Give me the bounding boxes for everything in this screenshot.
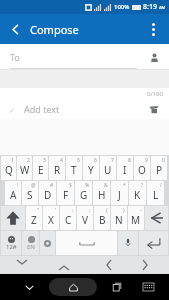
button[interactable]: % — [75, 181, 92, 205]
staticText: 9 — [145, 157, 148, 164]
button[interactable]: ' — [43, 206, 59, 230]
button[interactable]: Switch keyboard — [137, 276, 159, 298]
button[interactable]: 4 — [49, 156, 65, 180]
staticText: L — [153, 188, 159, 202]
button[interactable]: 7 — [100, 156, 116, 180]
button[interactable]: " — [26, 206, 42, 230]
button[interactable]: 6 — [83, 156, 99, 180]
staticText: P — [156, 163, 163, 177]
staticText: G — [80, 188, 88, 202]
button[interactable]: Send — [145, 100, 163, 118]
staticText: 6 — [94, 157, 97, 164]
staticText: Compose — [30, 22, 79, 37]
staticText: Z — [31, 213, 37, 227]
button[interactable]: Space — [56, 231, 117, 255]
staticText: R — [54, 163, 61, 177]
staticText: Q — [5, 163, 13, 177]
button[interactable]: @ — [22, 181, 38, 205]
button[interactable]: Right — [127, 256, 169, 274]
button[interactable]: * — [111, 181, 128, 205]
button[interactable]: ? — [129, 181, 146, 205]
staticText: # — [50, 182, 54, 189]
button[interactable]: Hide keyboard — [17, 276, 41, 298]
button[interactable]: Voice input — [118, 231, 138, 255]
button[interactable]: Symbols — [1, 231, 21, 255]
button[interactable]: # — [39, 181, 56, 205]
staticText: EN — [27, 243, 35, 251]
button[interactable]: : — [60, 206, 76, 230]
button[interactable]: $ — [57, 181, 74, 205]
button[interactable]: Down — [43, 256, 85, 274]
button[interactable]: Language — [22, 231, 39, 255]
button[interactable]: ) — [111, 206, 127, 230]
button[interactable]: 5 — [66, 156, 82, 180]
staticText: ' — [55, 207, 57, 214]
button[interactable]: Backspace — [145, 206, 168, 230]
staticText: C — [65, 213, 72, 227]
button[interactable]: Home — [49, 278, 97, 296]
button[interactable]: Shift — [1, 206, 25, 230]
staticText: " — [37, 207, 40, 214]
staticText: 8 — [128, 157, 131, 164]
staticText: % — [85, 182, 90, 189]
staticText: ; — [89, 207, 91, 214]
staticText: 3 — [43, 157, 46, 164]
staticText: W — [20, 163, 30, 177]
staticText: X — [48, 213, 54, 227]
button[interactable]: 8 — [117, 156, 133, 180]
button[interactable]: - — [128, 206, 144, 230]
button[interactable]: ; — [77, 206, 93, 230]
button[interactable]: 1 — [1, 156, 16, 180]
button[interactable]: & — [93, 181, 110, 205]
staticText: F — [63, 188, 69, 202]
staticText: O — [138, 163, 146, 177]
staticText: $ — [69, 182, 72, 189]
staticText: 5 — [77, 157, 80, 164]
staticText: 7 — [111, 157, 114, 164]
staticText: 2 — [27, 157, 30, 164]
button[interactable]: Recent apps — [105, 276, 129, 298]
button[interactable]: 9 — [134, 156, 150, 180]
staticText: 4 — [60, 157, 63, 164]
staticText: V — [82, 213, 88, 227]
staticText: 0 — [162, 157, 165, 164]
staticText: To — [10, 51, 20, 63]
button[interactable]: Left — [85, 256, 127, 274]
button[interactable]: 2 — [17, 156, 32, 180]
button[interactable]: 0 — [151, 156, 167, 180]
staticText: M — [131, 213, 141, 227]
button[interactable]: ! — [5, 181, 21, 205]
button[interactable]: Attach — [4, 101, 20, 117]
staticText: T — [71, 163, 77, 177]
staticText: 0/160 — [147, 90, 163, 98]
staticText: J — [118, 188, 121, 202]
staticText: Y — [88, 163, 94, 177]
button[interactable]: Enter — [139, 231, 168, 255]
staticText: I — [123, 163, 127, 177]
staticText: K — [134, 188, 141, 202]
staticText: ! — [17, 182, 19, 189]
staticText: * — [123, 182, 126, 189]
staticText: 1 — [11, 157, 14, 164]
button[interactable]: More options — [140, 16, 166, 42]
button[interactable]: 3 — [33, 156, 48, 180]
staticText: 8:19 — [143, 2, 157, 12]
staticText: ? — [141, 182, 144, 189]
staticText: @ — [31, 182, 36, 189]
staticText: B — [99, 213, 106, 227]
staticText: ) — [123, 207, 125, 214]
button[interactable]: / — [147, 181, 164, 205]
button[interactable]: ( — [94, 206, 110, 230]
staticText: A — [10, 188, 17, 202]
button[interactable]: Keyboard settings — [40, 231, 55, 255]
staticText: H — [98, 188, 106, 202]
staticText: : — [72, 207, 74, 214]
staticText: / — [160, 182, 162, 189]
staticText: & — [104, 182, 108, 189]
button[interactable]: Up — [0, 256, 43, 274]
button[interactable]: To — [0, 44, 169, 69]
button[interactable]: Choose contact — [145, 48, 163, 66]
button[interactable]: Back — [2, 16, 28, 42]
staticText: S — [27, 188, 33, 202]
button[interactable]: Add text — [24, 103, 145, 115]
